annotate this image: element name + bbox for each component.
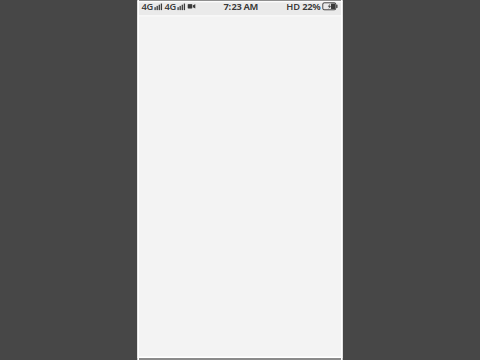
staticText: HD [286, 0, 300, 12]
staticText: 4G [164, 0, 176, 12]
staticText: 7:23 AM [223, 0, 258, 12]
staticText: 22% [302, 0, 320, 12]
staticText: 4G [141, 0, 153, 12]
